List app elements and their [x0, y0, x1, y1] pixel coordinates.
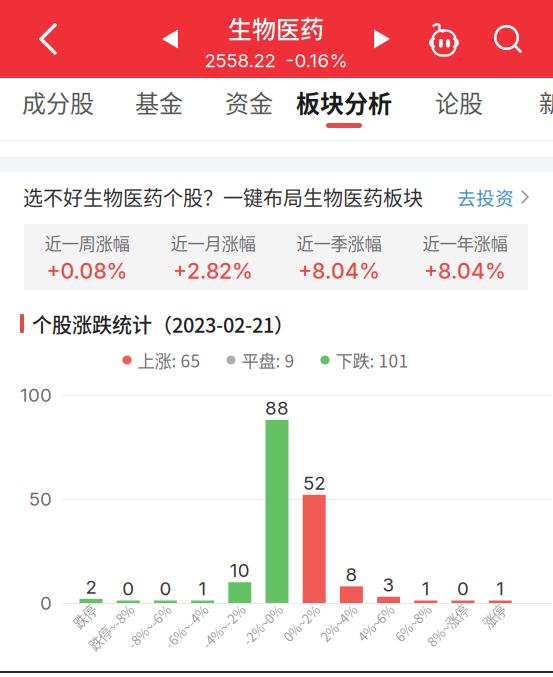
staticText: 2: [85, 575, 96, 598]
staticText: 0: [159, 577, 171, 600]
staticText: 新: [539, 85, 553, 119]
staticText: 10: [230, 559, 250, 581]
button[interactable]: 板块分析: [289, 78, 399, 140]
staticText: 近一年涨幅: [422, 230, 507, 255]
staticText: 2558.22 -0.16%: [204, 49, 347, 72]
staticText: 跌停~-8%: [90, 636, 147, 656]
staticText: -4%~-2%: [204, 636, 259, 656]
staticText: 成分股: [22, 85, 94, 119]
staticText: 基金: [135, 85, 183, 119]
staticText: 2%~4%: [325, 636, 370, 656]
button[interactable]: Search: [482, 0, 534, 78]
staticText: 1: [422, 577, 430, 600]
staticText: 生物医药: [228, 10, 324, 45]
staticText: 论股: [435, 85, 483, 119]
staticText: 平盘: 9: [241, 347, 294, 373]
staticText: 1: [199, 577, 207, 600]
staticText: 1: [496, 577, 504, 600]
staticText: 选不好生物医药个股？一键布局生物医药板块: [23, 182, 423, 211]
staticText: 6%~8%: [400, 636, 445, 656]
button[interactable]: 基金: [104, 78, 214, 140]
staticText: 0: [457, 577, 469, 600]
staticText: 8%~涨停: [430, 636, 482, 656]
button[interactable]: 选不好生物医药个股？一键布局生物医药板块: [0, 172, 553, 222]
staticText: -2%~0%: [246, 636, 296, 656]
button[interactable]: 新: [496, 78, 553, 140]
staticText: 跌停: [84, 636, 110, 656]
staticText: 上涨: 65: [137, 347, 200, 373]
button[interactable]: Back: [20, 0, 76, 78]
staticText: 下跌: 101: [335, 347, 408, 373]
staticText: 板块分析: [296, 85, 392, 119]
staticText: 4%~6%: [363, 636, 408, 656]
staticText: 近一月涨幅: [170, 230, 255, 255]
button[interactable]: Next sector: [360, 0, 404, 78]
staticText: 0: [40, 592, 52, 614]
staticText: 3: [383, 573, 395, 596]
staticText: 去投资: [457, 183, 514, 210]
staticText: 52: [303, 471, 325, 494]
button[interactable]: 资金: [194, 78, 304, 140]
staticText: 个股涨跌统计（2023-02-21）: [32, 309, 294, 338]
staticText: +0.08%: [46, 258, 127, 284]
staticText: 0: [122, 577, 134, 600]
staticText: 50: [29, 488, 52, 510]
staticText: 资金: [225, 85, 273, 119]
button[interactable]: Previous sector: [148, 0, 192, 78]
staticText: 0%~2%: [288, 636, 333, 656]
staticText: 88: [265, 397, 289, 419]
staticText: 8: [345, 563, 357, 586]
button[interactable]: 论股: [404, 78, 514, 140]
staticText: +8.04%: [298, 258, 380, 284]
button[interactable]: AI assistant: [416, 0, 472, 78]
button[interactable]: 成分股: [3, 78, 113, 140]
staticText: 100: [20, 384, 52, 406]
staticText: +2.82%: [173, 258, 253, 284]
staticText: 近一季涨幅: [296, 230, 381, 255]
staticText: -6%~-4%: [167, 636, 222, 656]
staticText: 近一周涨幅: [44, 230, 129, 255]
staticText: +8.04%: [424, 258, 506, 284]
staticText: -8%~-6%: [129, 636, 184, 656]
